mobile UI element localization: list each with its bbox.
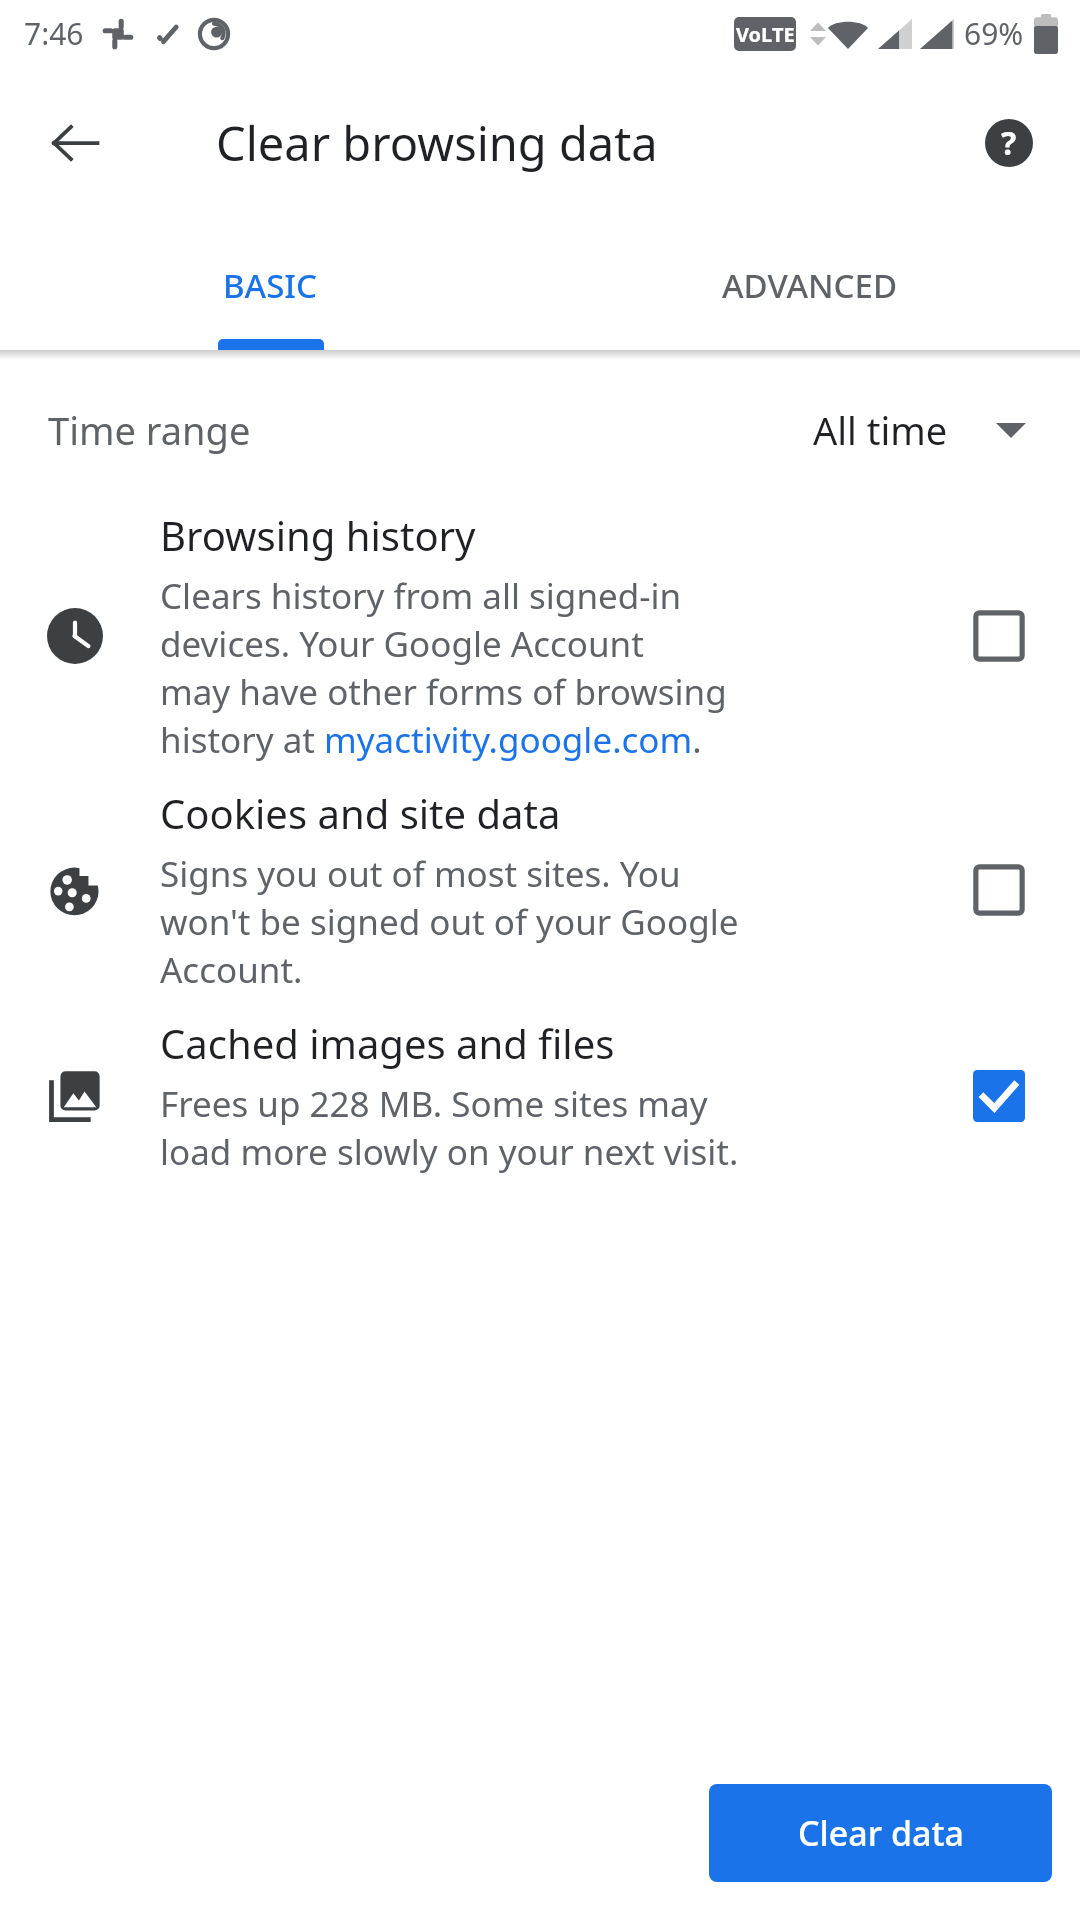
button[interactable]: Unchecked [962, 853, 1036, 927]
staticText: won't be signed out of your Google [160, 898, 739, 946]
button[interactable]: Cookies and site data [0, 786, 1080, 994]
staticText: ADVANCED [722, 263, 898, 308]
button[interactable]: Back [36, 104, 114, 182]
staticText: Clear browsing data [216, 111, 658, 175]
staticText: Browsing history [160, 508, 476, 562]
staticText: history at myactivity.google.com. [160, 716, 702, 764]
staticText: devices. Your Google Account [160, 620, 644, 668]
button[interactable]: Time range [0, 382, 1080, 478]
staticText: load more slowly on your next visit. [160, 1128, 739, 1176]
button[interactable]: BASIC [0, 220, 540, 350]
staticText: 69% [964, 13, 1024, 54]
staticText: All time [813, 404, 948, 456]
staticText: Time range [48, 404, 251, 456]
staticText: Signs you out of most sites. You [160, 850, 681, 898]
staticText: BASIC [223, 263, 317, 308]
staticText: 7:46 [24, 13, 84, 54]
button[interactable]: Help [970, 104, 1048, 182]
staticText: Account. [160, 946, 303, 994]
staticText: Cached images and files [160, 1016, 615, 1070]
staticText: Frees up 228 MB. Some sites may [160, 1080, 708, 1128]
staticText: VoLTE [736, 21, 795, 48]
button[interactable]: Cached images and files [0, 1016, 1080, 1176]
button[interactable]: ADVANCED [540, 220, 1080, 350]
button[interactable]: Unchecked [962, 599, 1036, 673]
staticText: may have other forms of browsing [160, 668, 727, 716]
staticText: Cookies and site data [160, 786, 561, 840]
button[interactable]: Clear data [709, 1784, 1052, 1882]
button[interactable]: Browsing history [0, 508, 1080, 764]
staticText: Clears history from all signed-in [160, 572, 682, 620]
staticText: Clear data [798, 1810, 964, 1856]
staticText: ? [1001, 121, 1017, 165]
button[interactable]: Checked [962, 1059, 1036, 1133]
